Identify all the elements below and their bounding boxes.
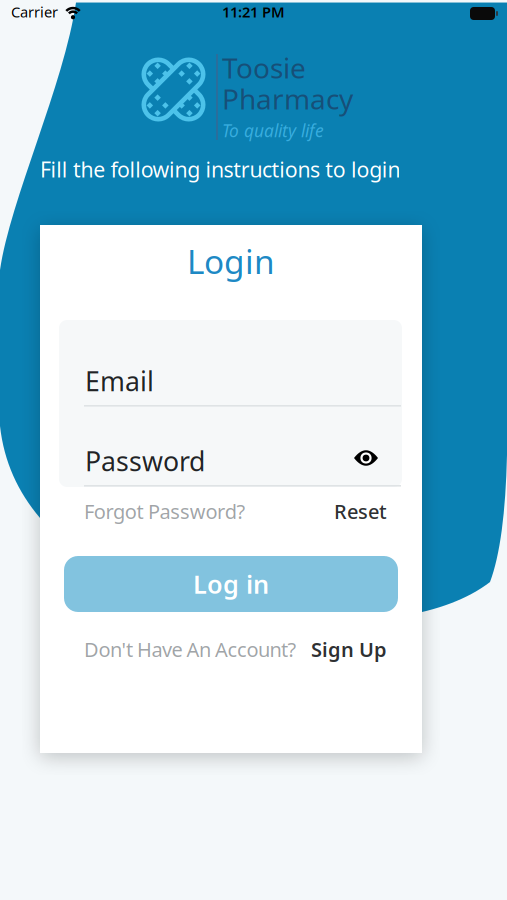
button[interactable]: Reset (334, 498, 387, 525)
button[interactable]: Sign Up (311, 636, 387, 663)
staticText: Pharmacy (222, 80, 353, 117)
staticText: Password (85, 443, 205, 479)
button[interactable]: Don't Have An Account? (84, 636, 296, 663)
staticText: Log in (193, 567, 269, 601)
staticText: Fill the following instructions to login (40, 155, 400, 183)
staticText: Email (85, 363, 154, 399)
button[interactable]: Email (85, 363, 402, 399)
button[interactable]: Forgot Password? (84, 498, 245, 525)
staticText: Don't Have An Account? (84, 636, 296, 663)
staticText: To quality life (222, 119, 324, 142)
staticText: Login (187, 239, 275, 283)
button[interactable]: Log in (64, 556, 398, 612)
button[interactable]: Password (85, 443, 335, 479)
button[interactable]: Show password (346, 443, 386, 473)
staticText: Carrier (11, 2, 58, 21)
staticText: Reset (334, 498, 387, 525)
staticText: Sign Up (311, 636, 387, 663)
staticText: Forgot Password? (84, 498, 245, 525)
staticText: 11:21 PM (222, 2, 285, 21)
staticText: Toosie (222, 49, 306, 86)
